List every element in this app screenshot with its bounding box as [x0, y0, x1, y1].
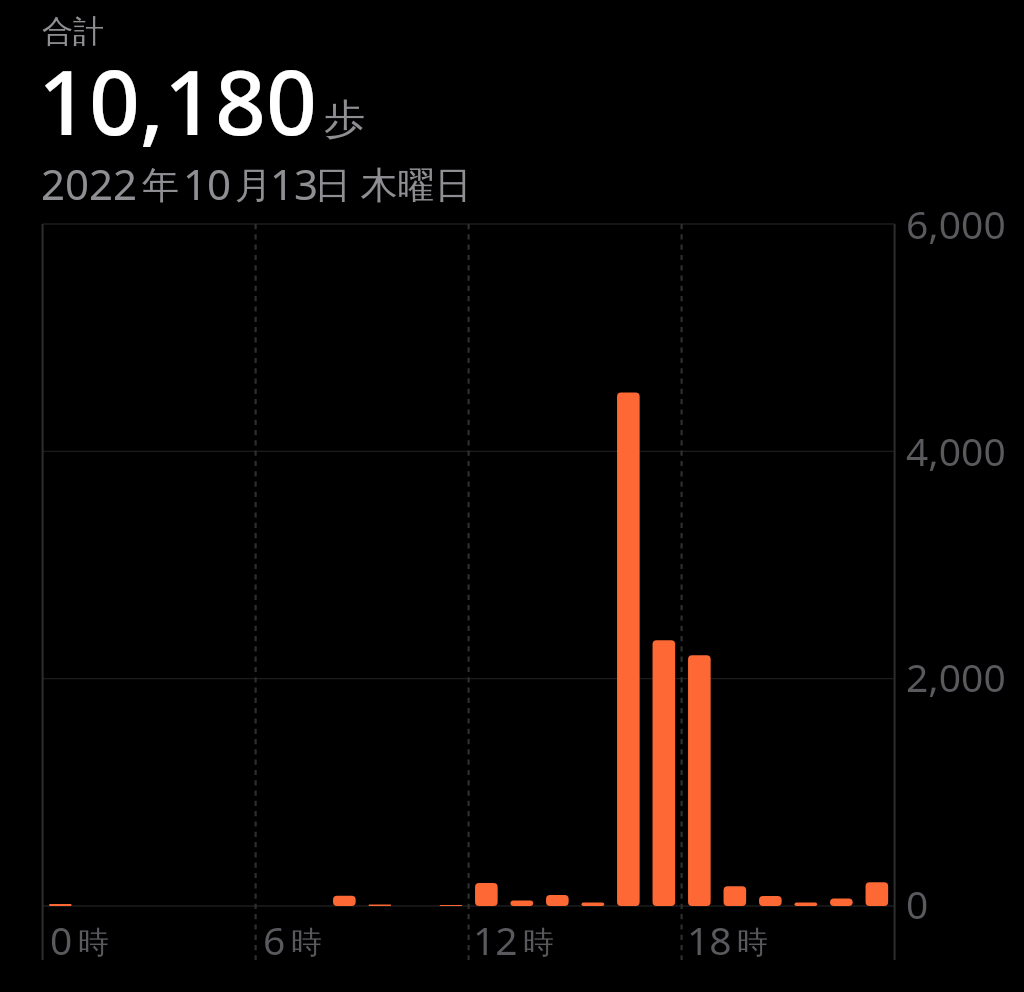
- staticText: 4,000: [906, 424, 1006, 477]
- staticText: 10,180: [38, 40, 317, 161]
- staticText: 0: [906, 877, 929, 930]
- button[interactable]: [0, 0, 1024, 208]
- staticText: 10: [183, 155, 232, 212]
- staticText: 時: [291, 923, 322, 962]
- staticText: 12: [473, 913, 518, 966]
- button[interactable]: Hourly step chart: [0, 210, 1024, 980]
- staticText: 6,000: [906, 197, 1006, 250]
- staticText: 時: [523, 923, 554, 962]
- staticText: 合計: [42, 12, 104, 51]
- staticText: 2,000: [906, 650, 1006, 703]
- staticText: 2022: [41, 155, 138, 212]
- staticText: 歩: [324, 94, 365, 146]
- staticText: 日 木曜日: [314, 158, 472, 209]
- staticText: 月: [235, 162, 272, 209]
- staticText: 18: [687, 913, 732, 966]
- staticText: 年: [142, 162, 179, 209]
- staticText: 時: [737, 923, 768, 962]
- staticText: 0: [50, 913, 73, 966]
- staticText: 13: [270, 155, 319, 212]
- staticText: 6: [263, 913, 286, 966]
- staticText: 時: [78, 923, 109, 962]
